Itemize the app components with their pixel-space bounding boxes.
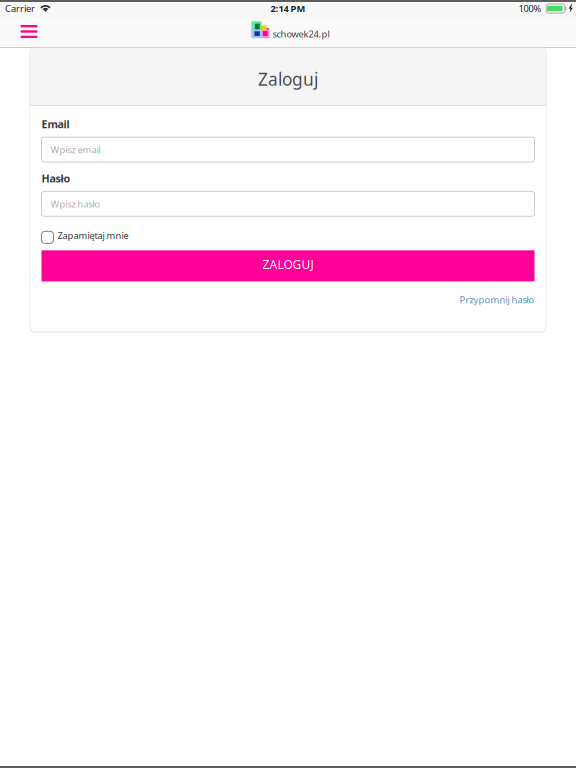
staticText: 100% xyxy=(519,2,542,15)
staticText: Carrier xyxy=(5,2,35,15)
staticText: ZALOGUJ xyxy=(262,256,313,272)
button[interactable]: Menu xyxy=(0,19,47,48)
button[interactable]: ZALOGUJ xyxy=(41,250,534,281)
staticText: Zapamiętaj mnie xyxy=(57,229,128,241)
staticText: schowek24.pl xyxy=(272,28,329,40)
staticText: Wpisz hasło xyxy=(50,198,100,210)
staticText: 2:14 PM xyxy=(270,2,305,15)
staticText: Hasło xyxy=(41,171,70,185)
staticText: Przypomnij hasło xyxy=(459,293,534,306)
button[interactable]: Zapamiętaj mnie xyxy=(41,231,128,243)
button[interactable]: Przypomnij hasło xyxy=(459,293,534,306)
staticText: Wpisz email xyxy=(50,143,100,156)
staticText: Zaloguj xyxy=(258,67,318,90)
staticText: Email xyxy=(41,117,69,131)
